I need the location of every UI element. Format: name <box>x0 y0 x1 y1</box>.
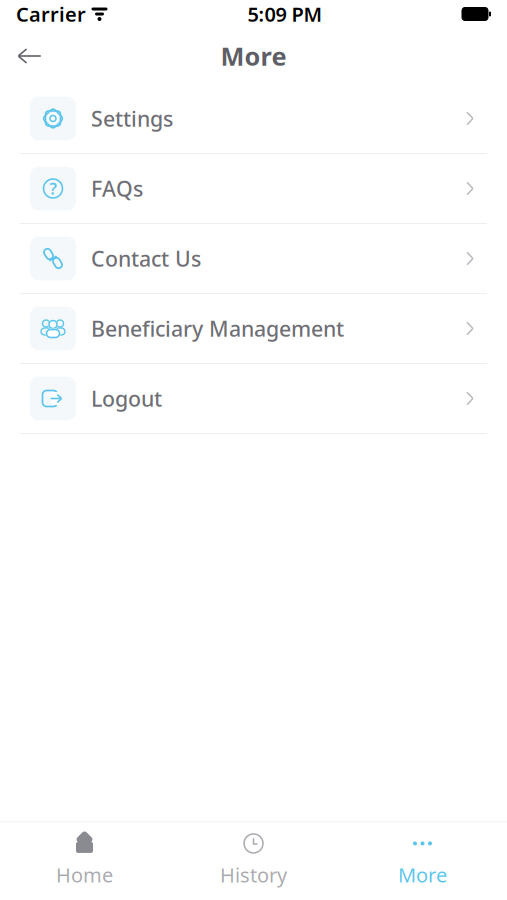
staticText: Home <box>56 861 113 888</box>
button[interactable]: Contact Us <box>0 224 507 294</box>
staticText: 5:09 PM <box>247 1 322 27</box>
button[interactable]: Logout <box>0 364 507 434</box>
button[interactable]: Back <box>10 36 50 76</box>
button[interactable]: History <box>169 832 338 888</box>
staticText: FAQs <box>91 174 143 203</box>
staticText: Logout <box>91 384 162 413</box>
button[interactable]: ? <box>0 154 507 224</box>
staticText: Settings <box>91 104 173 133</box>
staticText: History <box>220 861 287 888</box>
staticText: More <box>398 861 447 888</box>
staticText: Beneficiary Management <box>91 314 344 343</box>
staticText: Carrier <box>16 1 86 27</box>
staticText: Contact Us <box>91 244 201 273</box>
staticText: ? <box>49 178 56 199</box>
button[interactable]: Settings <box>0 84 507 154</box>
button[interactable]: More <box>338 832 507 888</box>
staticText: More <box>220 39 286 73</box>
button[interactable]: Beneficiary Management <box>0 294 507 364</box>
button[interactable]: Home <box>0 832 169 888</box>
